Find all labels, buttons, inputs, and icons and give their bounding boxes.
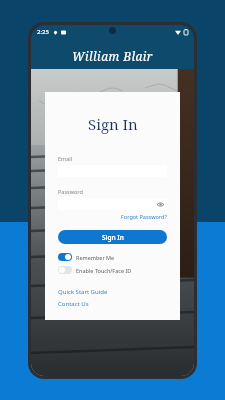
staticText: Contact Us bbox=[58, 300, 89, 308]
button[interactable]: Contact Us bbox=[58, 300, 89, 308]
button[interactable]: Show password bbox=[58, 198, 167, 210]
staticText: Email bbox=[58, 155, 73, 162]
button[interactable]: Sign In bbox=[58, 230, 167, 244]
staticText: Sign In bbox=[102, 233, 124, 242]
staticText: Sign In bbox=[88, 114, 138, 134]
staticText: Password bbox=[58, 188, 83, 195]
staticText: Quick Start Guide bbox=[58, 288, 108, 296]
staticText: William Blair bbox=[72, 48, 153, 64]
button[interactable]: Forgot Password? bbox=[121, 213, 167, 220]
button[interactable]: Quick Start Guide bbox=[58, 288, 108, 296]
button[interactable]: Show password bbox=[156, 200, 164, 208]
staticText: Enable Touch/Face ID bbox=[76, 267, 132, 274]
button[interactable]: Enable Touch/Face ID bbox=[58, 266, 167, 274]
staticText: 2:25 bbox=[37, 28, 49, 36]
button[interactable]: Remember Me bbox=[58, 253, 167, 261]
staticText: Forgot Password? bbox=[121, 213, 167, 220]
staticText: Remember Me bbox=[76, 254, 115, 261]
